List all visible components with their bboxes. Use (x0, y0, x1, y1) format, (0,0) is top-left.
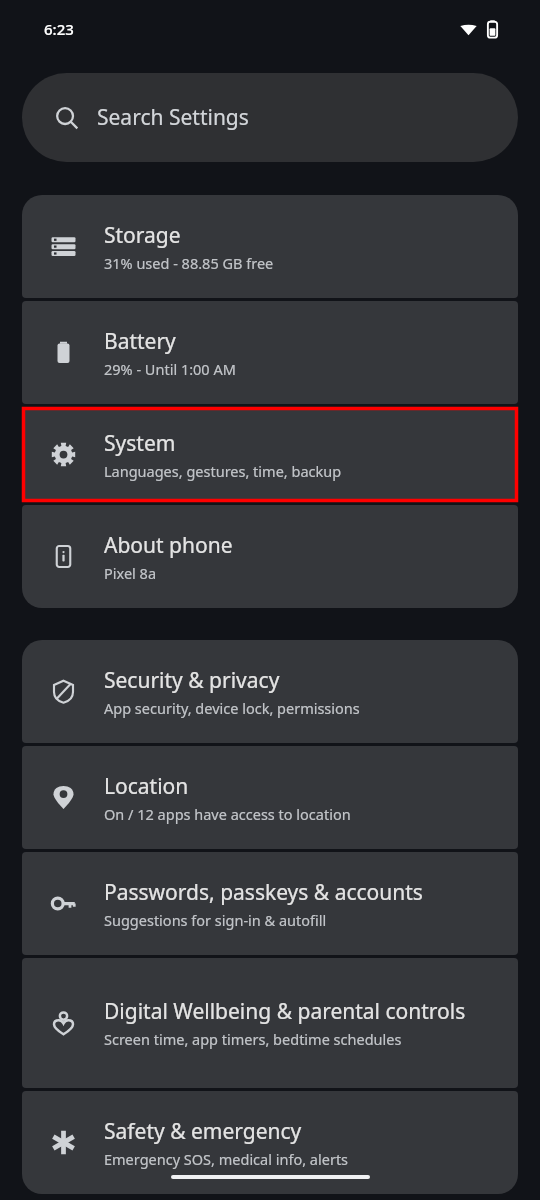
staticText: On / 12 apps have access to location (104, 804, 351, 824)
staticText: Suggestions for sign-in & autofill (104, 910, 327, 930)
staticText: Storage (104, 221, 181, 250)
staticText: System (104, 429, 176, 458)
button[interactable]: Digital Wellbeing & parental controls (22, 958, 518, 1088)
staticText: 29% - Until 1:00 AM (104, 359, 236, 379)
staticText: 6:23 (44, 19, 74, 39)
button[interactable]: Battery (22, 301, 518, 404)
staticText: Screen time, app timers, bedtime schedul… (104, 1029, 402, 1049)
button[interactable]: Passwords, passkeys & accounts (22, 852, 518, 955)
staticText: 31% used - 88.85 GB free (104, 253, 274, 273)
button[interactable]: System (22, 407, 518, 502)
staticText: Security & privacy (104, 666, 280, 695)
staticText: Battery (104, 327, 176, 356)
staticText: Safety & emergency (104, 1117, 302, 1146)
staticText: Passwords, passkeys & accounts (104, 878, 423, 907)
staticText: Location (104, 772, 189, 801)
button[interactable]: About phone (22, 505, 518, 608)
staticText: About phone (104, 531, 233, 560)
button[interactable]: Safety & emergency (22, 1091, 518, 1194)
staticText: Pixel 8a (104, 563, 157, 583)
staticText: Emergency SOS, medical info, alerts (104, 1149, 349, 1169)
button[interactable]: Storage (22, 195, 518, 298)
button[interactable]: Security & privacy (22, 640, 518, 743)
staticText: Search Settings (97, 103, 249, 132)
button[interactable]: Search Settings (22, 73, 518, 162)
staticText: Digital Wellbeing & parental controls (104, 997, 466, 1026)
staticText: App security, device lock, permissions (104, 698, 360, 718)
staticText: Languages, gestures, time, backup (104, 461, 342, 481)
button[interactable]: Location (22, 746, 518, 849)
